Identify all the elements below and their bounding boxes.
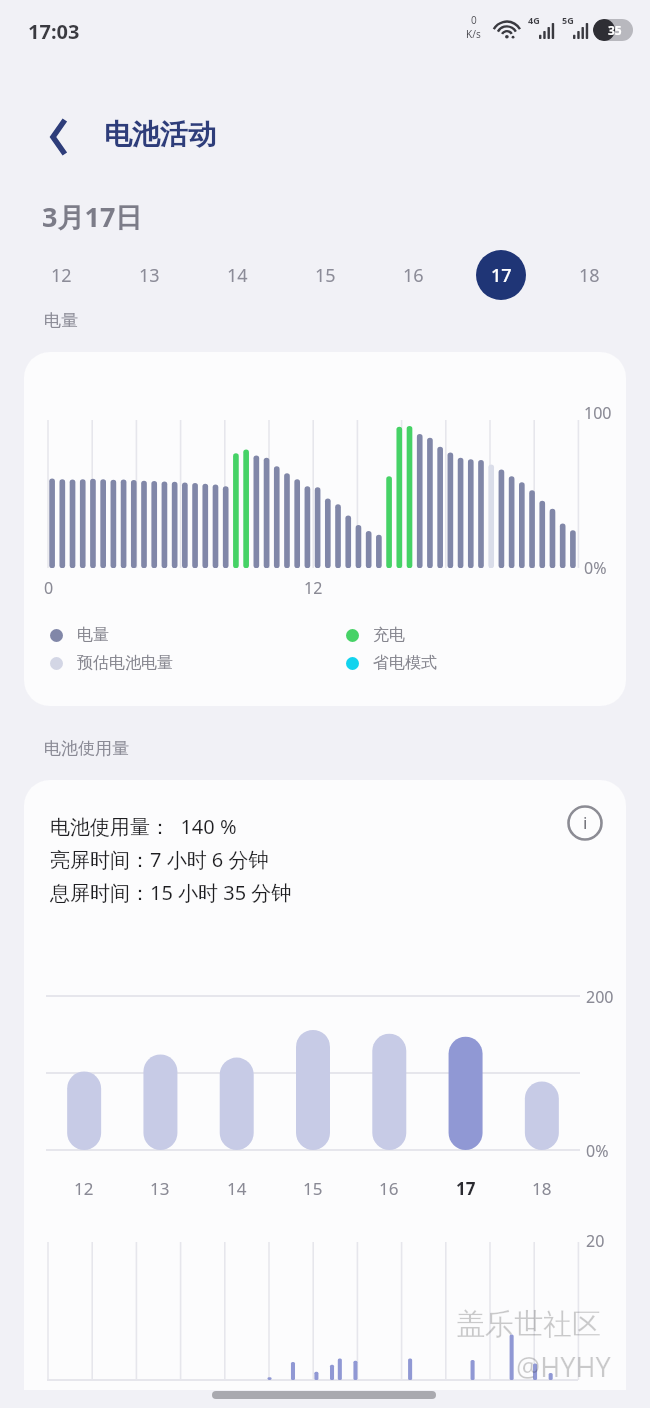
staticText: 4G [528,14,540,26]
staticText: K/s [466,27,481,41]
staticText: @HYHY [516,1348,611,1385]
staticText: 17 [491,263,512,288]
staticText: 17:03 [28,18,80,45]
staticText: 13 [139,263,160,288]
staticText: 0% [584,557,607,579]
staticText: 18 [532,1177,552,1200]
staticText: 16 [379,1177,399,1200]
staticText: 3月17日 [42,198,143,235]
staticText: 15 [303,1177,323,1200]
button[interactable]: 18 [564,250,614,300]
staticText: 12 [51,263,72,288]
staticText: 电池使用量： 140 % [50,813,237,840]
staticText: 亮屏时间：7 小时 6 分钟 [50,846,269,873]
staticText: 17 [456,1177,476,1200]
button[interactable]: 信息 [562,800,608,846]
staticText: 35 [608,22,622,38]
button[interactable]: 15 [300,250,350,300]
staticText: i [583,811,588,834]
button[interactable]: 返回 [32,104,88,170]
staticText: 13 [150,1177,170,1200]
staticText: 充电 [373,625,405,645]
staticText: 省电模式 [373,653,437,673]
button[interactable]: 电池活动 [104,117,216,152]
staticText: 预估电池电量 [77,653,173,673]
staticText: 5G [562,14,574,26]
staticText: 0% [586,1140,609,1162]
staticText: 0 [471,13,477,27]
staticText: 12 [74,1177,94,1200]
button[interactable]: 信息 [24,780,626,1390]
button[interactable]: 100 [24,352,626,706]
staticText: 电池使用量 [44,738,129,759]
staticText: 18 [579,263,600,288]
button[interactable]: 12 [36,250,86,300]
staticText: 16 [403,263,424,288]
staticText: 200 [586,986,614,1008]
staticText: 14 [227,1177,247,1200]
staticText: 电量 [77,625,109,645]
staticText: 15 [315,263,336,288]
staticText: 息屏时间：15 小时 35 分钟 [50,879,292,906]
staticText: 0 [44,577,54,599]
staticText: 100 [584,402,612,424]
staticText: 12 [304,577,323,599]
button[interactable]: 14 [212,250,262,300]
staticText: 14 [227,263,248,288]
staticText: 20 [586,1230,605,1252]
staticText: 电量 [44,310,78,331]
staticText: 盖乐世社区 [456,1306,601,1343]
button[interactable]: 16 [388,250,438,300]
button[interactable]: 17 [476,250,526,300]
button[interactable]: 13 [124,250,174,300]
